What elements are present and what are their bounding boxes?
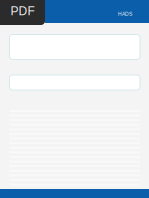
button[interactable]: HADS	[45, 0, 149, 23]
staticText: PDF	[10, 4, 34, 18]
button[interactable]	[0, 0, 45, 25]
staticText: HADS	[118, 11, 132, 17]
